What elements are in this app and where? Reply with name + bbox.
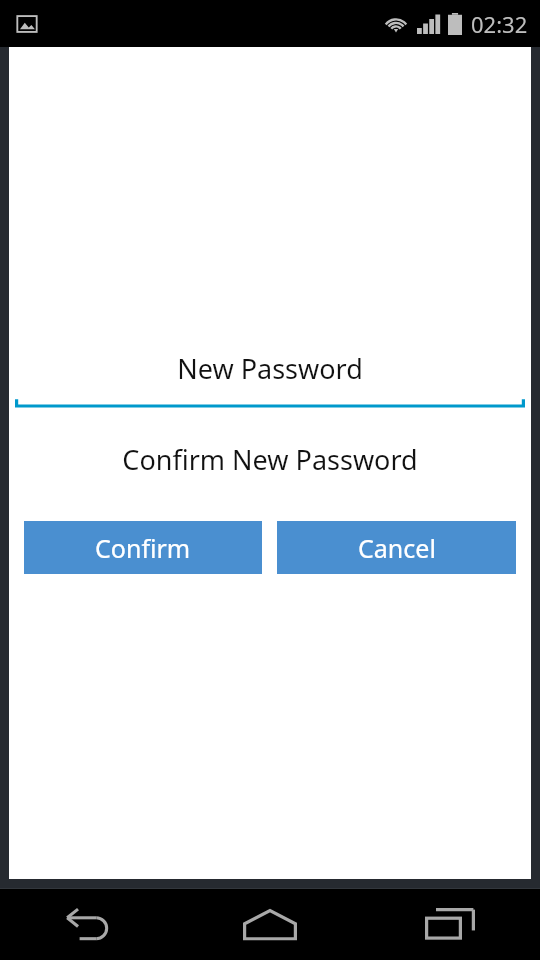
button[interactable]: Back bbox=[0, 889, 180, 960]
staticText: New Password bbox=[15, 350, 525, 387]
button[interactable]: New Password bbox=[15, 350, 525, 409]
staticText: Confirm bbox=[95, 531, 191, 565]
staticText: 02:32 bbox=[471, 9, 528, 39]
staticText: Confirm New Password bbox=[15, 441, 525, 478]
button[interactable]: Recent apps bbox=[360, 889, 540, 960]
staticText: Cancel bbox=[358, 531, 436, 565]
button[interactable]: Confirm bbox=[24, 521, 262, 574]
button[interactable]: Cancel bbox=[277, 521, 516, 574]
button[interactable]: Home bbox=[180, 889, 360, 960]
button[interactable]: Confirm New Password bbox=[15, 441, 525, 478]
